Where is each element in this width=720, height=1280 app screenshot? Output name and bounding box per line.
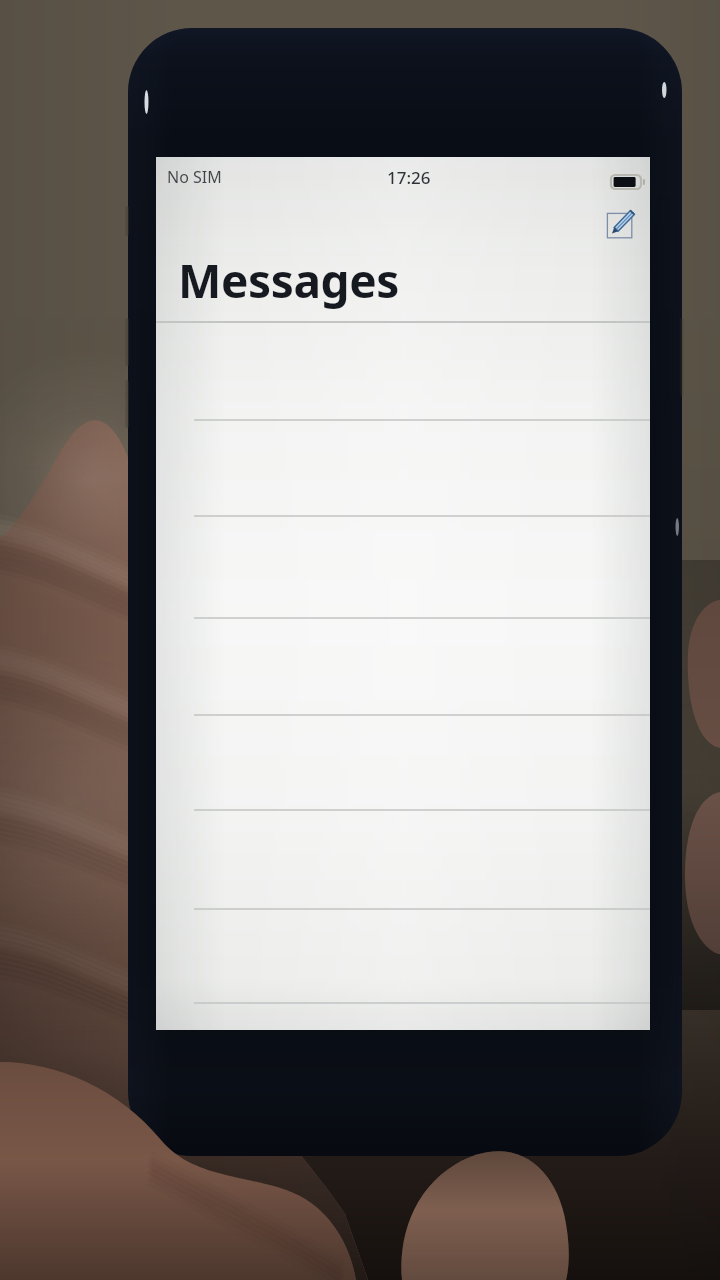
button[interactable]: Conversation: [156, 618, 650, 715]
staticText: Messages: [178, 249, 400, 312]
staticText: 17:26: [387, 166, 431, 189]
button[interactable]: Conversation: [156, 420, 650, 516]
button[interactable]: Conversation: [156, 322, 650, 420]
button[interactable]: Conversation: [156, 516, 650, 618]
button[interactable]: Conversation: [156, 715, 650, 810]
staticText: No SIM: [167, 166, 222, 188]
button[interactable]: Compose new message: [605, 205, 641, 241]
button[interactable]: Conversation: [156, 909, 650, 1003]
button[interactable]: Conversation: [156, 810, 650, 909]
